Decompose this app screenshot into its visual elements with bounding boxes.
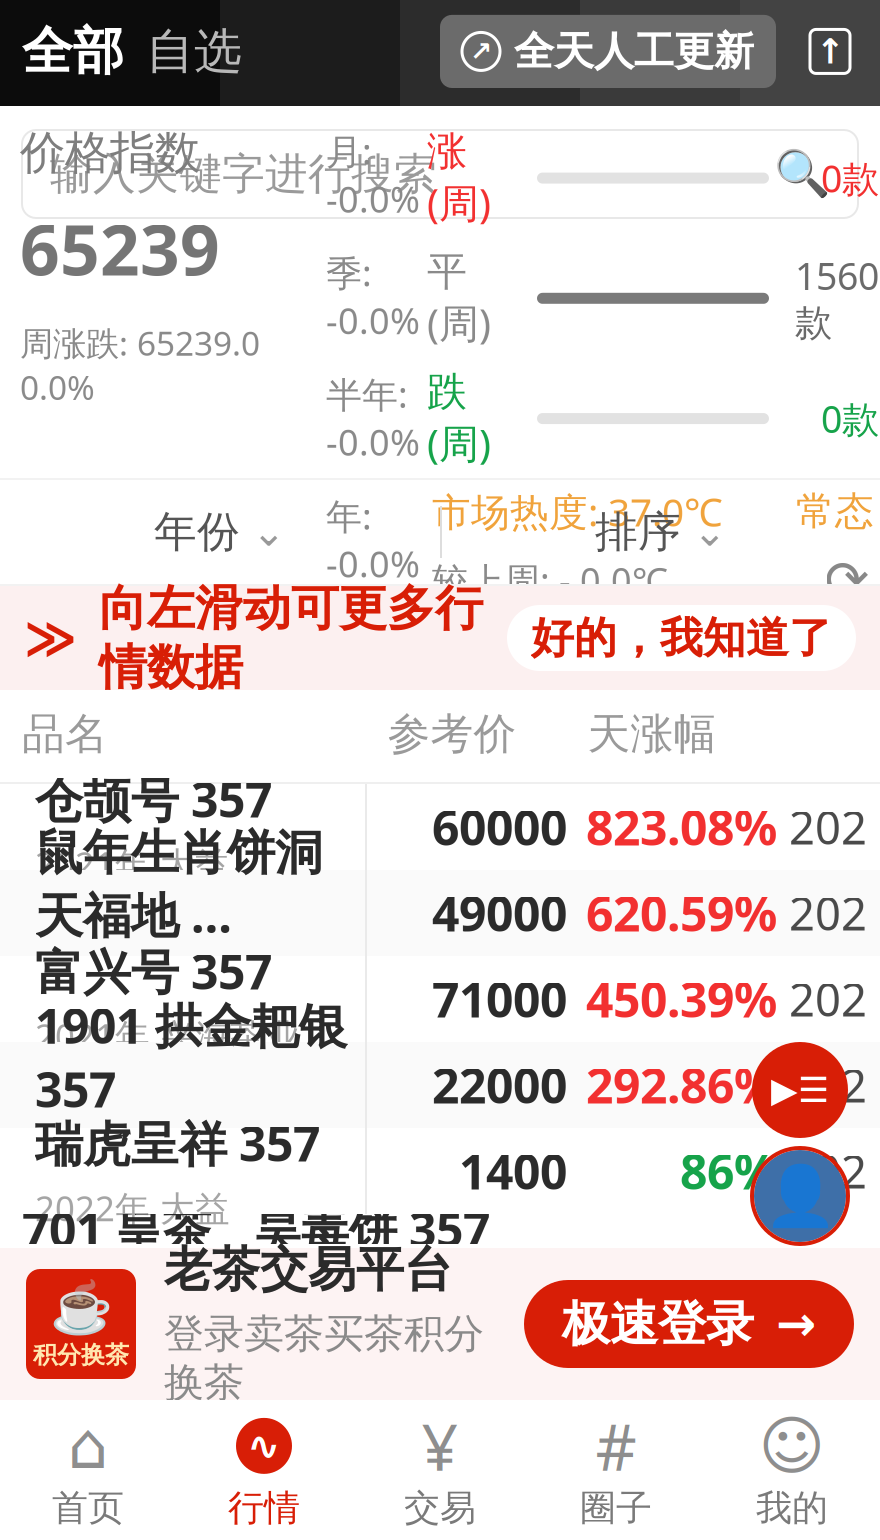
- staticText: →: [776, 1297, 816, 1351]
- staticText: 鼠年生肖饼洞天福地 …: [35, 824, 323, 946]
- staticText: 全天人工更新: [514, 27, 754, 76]
- staticText: 0款: [821, 153, 879, 203]
- button[interactable]: Share: [802, 23, 858, 79]
- staticText: 跌(周): [427, 367, 491, 470]
- staticText: 周涨跌: 65239.0 0.0%: [20, 321, 260, 409]
- staticText: 22000: [432, 1053, 567, 1117]
- staticText: ⌄: [693, 509, 727, 555]
- staticText: 2019年 大益: [35, 1131, 230, 1177]
- button[interactable]: 仓颉号 357: [0, 784, 880, 870]
- staticText: 86%: [680, 1139, 777, 1203]
- staticText: ⟳: [824, 550, 869, 610]
- staticText: 450.39%: [586, 967, 777, 1031]
- button[interactable]: ¥: [352, 1400, 528, 1540]
- staticText: ↑: [815, 32, 844, 71]
- staticText: 交易: [404, 1486, 476, 1530]
- button[interactable]: 鼠年生肖饼洞天福地 …: [0, 870, 880, 956]
- staticText: 1400: [459, 1139, 567, 1203]
- staticText: 积分换茶: [33, 1340, 129, 1370]
- staticText: 自选: [146, 22, 242, 81]
- staticText: #: [595, 1403, 636, 1488]
- staticText: 65239: [20, 203, 220, 295]
- button[interactable]: 输入关键字进行搜索: [22, 130, 858, 218]
- staticText: 620.59%: [586, 881, 777, 945]
- staticText: 202: [789, 883, 867, 943]
- staticText: 202: [789, 1055, 867, 1115]
- button[interactable]: Customer service: [752, 1148, 848, 1244]
- staticText: ⌂: [67, 1410, 108, 1482]
- staticText: 老茶交易平台: [164, 1240, 452, 1299]
- staticText: 首页: [52, 1486, 124, 1530]
- staticText: 1901 拱金耙银 357: [35, 993, 347, 1121]
- button[interactable]: 年份: [0, 482, 440, 582]
- button[interactable]: ↗: [440, 15, 776, 88]
- staticText: ∿: [247, 1423, 281, 1469]
- staticText: 参考价: [387, 708, 516, 760]
- staticText: 半年: -0.0%: [326, 370, 420, 466]
- staticText: ≫: [24, 609, 77, 667]
- staticText: 701 皇茶 昊毒饼 357: [22, 1197, 490, 1261]
- staticText: ☕: [49, 1278, 112, 1336]
- button[interactable]: 1901 拱金耙银 357: [0, 1042, 880, 1128]
- staticText: 823.08%: [586, 795, 777, 859]
- staticText: 登录卖茶买茶积分换茶: [164, 1309, 484, 1408]
- staticText: 市场热度: 37.0℃: [432, 486, 722, 537]
- staticText: 极速登录: [562, 1294, 754, 1353]
- staticText: 202: [789, 969, 867, 1029]
- staticText: ⌄: [252, 509, 286, 555]
- button[interactable]: 自选: [146, 22, 242, 81]
- staticText: 202: [789, 1141, 867, 1201]
- staticText: 瑞虎呈祥 357: [35, 1111, 320, 1175]
- button[interactable]: 全部: [22, 20, 124, 82]
- staticText: 71000: [432, 967, 567, 1031]
- button[interactable]: Refresh: [820, 553, 874, 607]
- button[interactable]: 瑞虎呈祥 357: [0, 1128, 880, 1214]
- staticText: 49000: [432, 881, 567, 945]
- staticText: ☺: [758, 1410, 825, 1482]
- staticText: 我的: [756, 1486, 828, 1530]
- button[interactable]: 排序: [442, 482, 880, 582]
- staticText: 天涨幅: [587, 708, 716, 760]
- staticText: 60000: [432, 795, 567, 859]
- staticText: 平(周): [427, 247, 491, 349]
- staticText: 输入关键字进行搜索: [50, 148, 437, 200]
- button[interactable]: ☕: [0, 1248, 880, 1400]
- staticText: 排序: [595, 506, 681, 558]
- staticText: 较上周: - 0.0℃: [432, 556, 668, 604]
- button[interactable]: 富兴号 357: [0, 956, 880, 1042]
- staticText: 2021年 大益: [35, 841, 230, 887]
- staticText: 年份: [154, 506, 240, 558]
- button[interactable]: 好的，我知道了: [507, 605, 856, 671]
- staticText: 月: -0.0%: [326, 127, 420, 223]
- staticText: 圈子: [580, 1486, 652, 1530]
- staticText: 富兴号 357: [35, 939, 272, 1003]
- staticText: 品名: [22, 708, 108, 760]
- staticText: 季: -0.0%: [326, 249, 420, 344]
- button[interactable]: ☺: [704, 1400, 880, 1540]
- staticText: 仓颉号 357: [35, 767, 272, 831]
- staticText: 0款: [821, 394, 879, 443]
- staticText: ▶☰: [771, 1070, 829, 1110]
- staticText: 2022年 大益: [35, 1185, 230, 1231]
- staticText: 292.86%: [586, 1053, 777, 1117]
- staticText: ↗: [470, 36, 492, 67]
- staticText: 价格指数: [20, 125, 200, 181]
- staticText: 🔍: [774, 148, 830, 200]
- staticText: 2021年 兴海茶业: [35, 1013, 300, 1059]
- staticText: 好的，我知道了: [531, 612, 832, 664]
- staticText: ¥: [421, 1403, 458, 1488]
- staticText: 常态: [796, 488, 874, 535]
- staticText: 👤: [763, 1162, 836, 1229]
- button[interactable]: #: [528, 1400, 704, 1540]
- staticText: 年: -0.0%: [326, 492, 420, 587]
- staticText: 2020年 大益: [35, 956, 230, 1002]
- staticText: 向左滑动可更多行情数据: [99, 579, 483, 697]
- staticText: 涨(周): [427, 127, 491, 229]
- staticText: 行情: [228, 1486, 300, 1530]
- button[interactable]: Quick menu: [752, 1042, 848, 1138]
- staticText: 1560款: [795, 251, 879, 346]
- staticText: 全部: [22, 20, 124, 82]
- button[interactable]: ⌂: [0, 1400, 176, 1540]
- staticText: 202: [789, 797, 867, 857]
- button[interactable]: ∿: [176, 1400, 352, 1540]
